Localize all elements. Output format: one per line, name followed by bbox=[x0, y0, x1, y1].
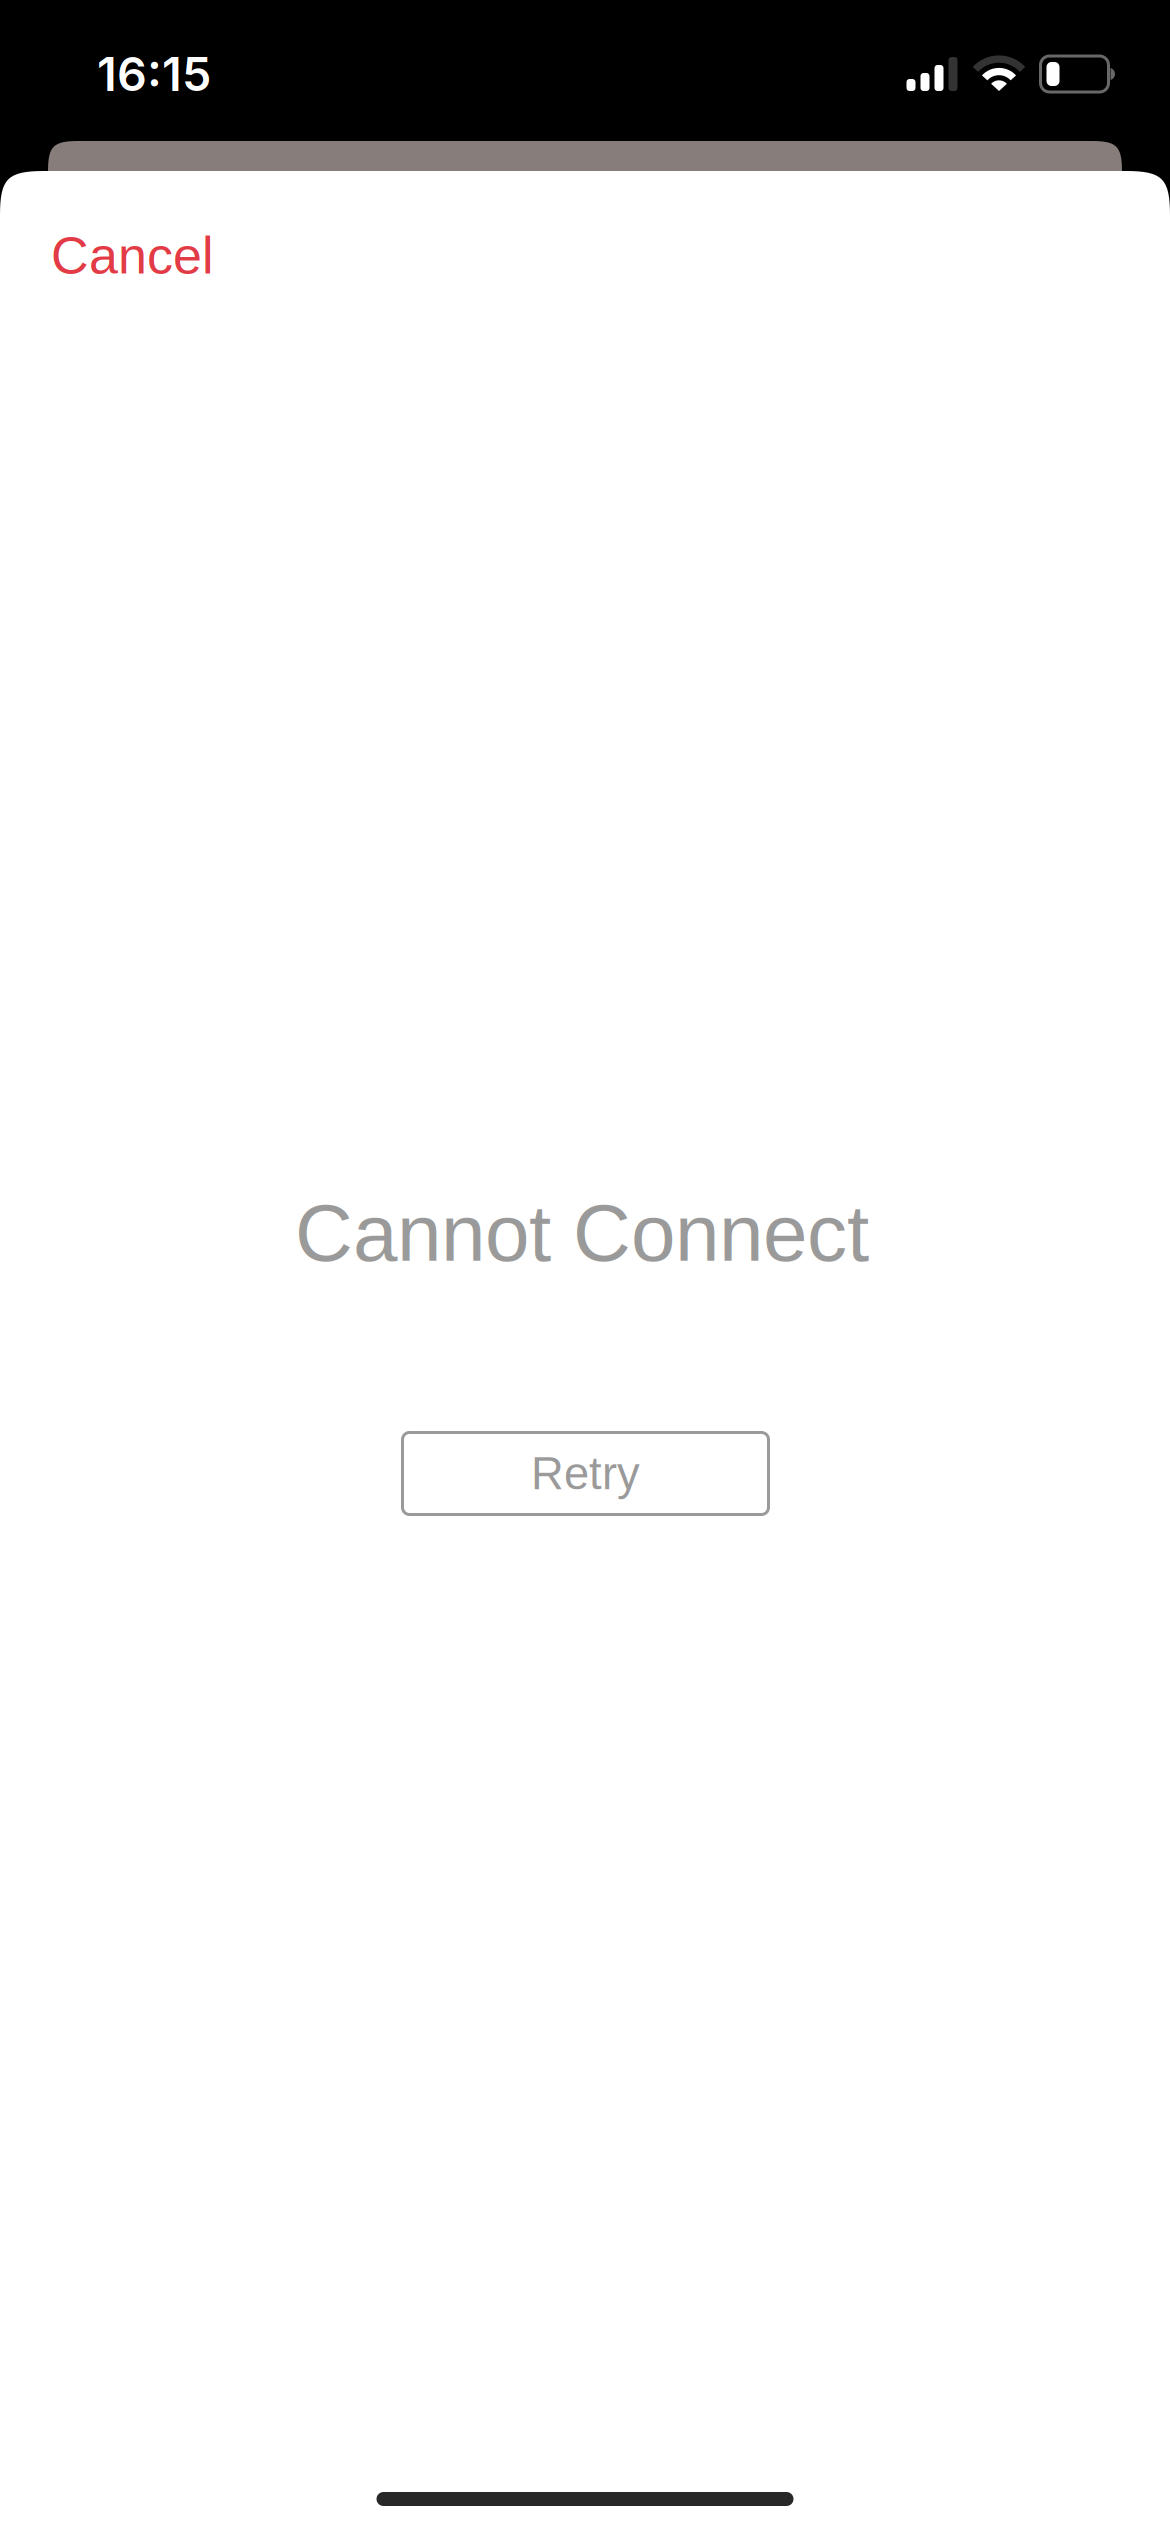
button[interactable]: Cancel bbox=[51, 189, 259, 321]
button[interactable]: Retry bbox=[401, 1431, 770, 1516]
staticText: 16:15 bbox=[97, 46, 211, 102]
staticText: Cancel bbox=[51, 226, 214, 285]
staticText: Retry bbox=[531, 1448, 640, 1499]
staticText: Cannot Connect bbox=[295, 1188, 869, 1278]
